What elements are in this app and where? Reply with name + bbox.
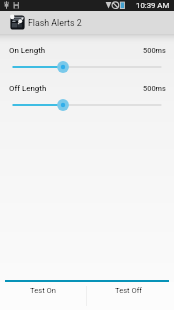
button[interactable]: Flash Alerts 2 app icon — [0, 11, 174, 34]
staticText: Off Length — [9, 84, 47, 93]
staticText: On Length — [9, 46, 46, 55]
staticText: Test On — [30, 286, 56, 295]
staticText: Test Off — [115, 286, 142, 295]
staticText: Flash Alerts 2 — [28, 18, 82, 28]
other: Flash Alerts 2 app icon — [10, 15, 25, 30]
staticText: 500ms — [143, 84, 166, 93]
staticText: 10:39 AM — [136, 1, 170, 10]
staticText: 500ms — [143, 46, 166, 55]
button[interactable]: On Length — [0, 55, 174, 69]
button[interactable]: Test Off — [87, 282, 174, 310]
button[interactable]: Test On — [0, 282, 86, 310]
button[interactable]: Off Length — [0, 93, 174, 107]
